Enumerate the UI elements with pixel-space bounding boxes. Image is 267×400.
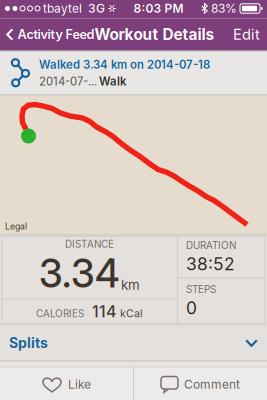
staticText: Activity Feed (18, 27, 95, 42)
button[interactable]: Activity Feed (0, 18, 99, 50)
staticText: Edit (233, 26, 260, 43)
staticText: 2014-07-... (39, 74, 97, 88)
staticText: 3G (82, 1, 105, 16)
staticText: tbaytel (40, 1, 82, 16)
staticText: DISTANCE (65, 238, 114, 250)
button[interactable]: Like (0, 367, 133, 400)
staticText: 0 (186, 297, 197, 318)
staticText: 114 (84, 302, 117, 321)
staticText: kCal (117, 307, 143, 320)
staticText: 8:03 PM (133, 1, 183, 16)
button[interactable]: Comment (134, 367, 267, 400)
staticText: Like (68, 377, 91, 392)
button[interactable]: Edit (226, 18, 267, 50)
button[interactable]: Walked 3.34 km on 2014-07-18 (0, 51, 267, 94)
staticText: 38:52 (186, 253, 235, 274)
staticText: DURATION (186, 239, 236, 251)
staticText: Walk (99, 74, 126, 88)
staticText: 83% (208, 1, 240, 16)
staticText: STEPS (186, 283, 216, 295)
staticText: Legal (5, 221, 27, 231)
staticText: Splits (9, 334, 48, 351)
staticText: km (121, 277, 140, 293)
staticText: CALORIES (36, 308, 84, 320)
staticText: 3.34 (39, 250, 120, 297)
staticText: Walked 3.34 km on 2014-07-18 (39, 58, 210, 71)
button[interactable]: Splits (0, 325, 267, 360)
staticText: Comment (184, 377, 240, 392)
staticText: Workout Details (94, 25, 214, 44)
